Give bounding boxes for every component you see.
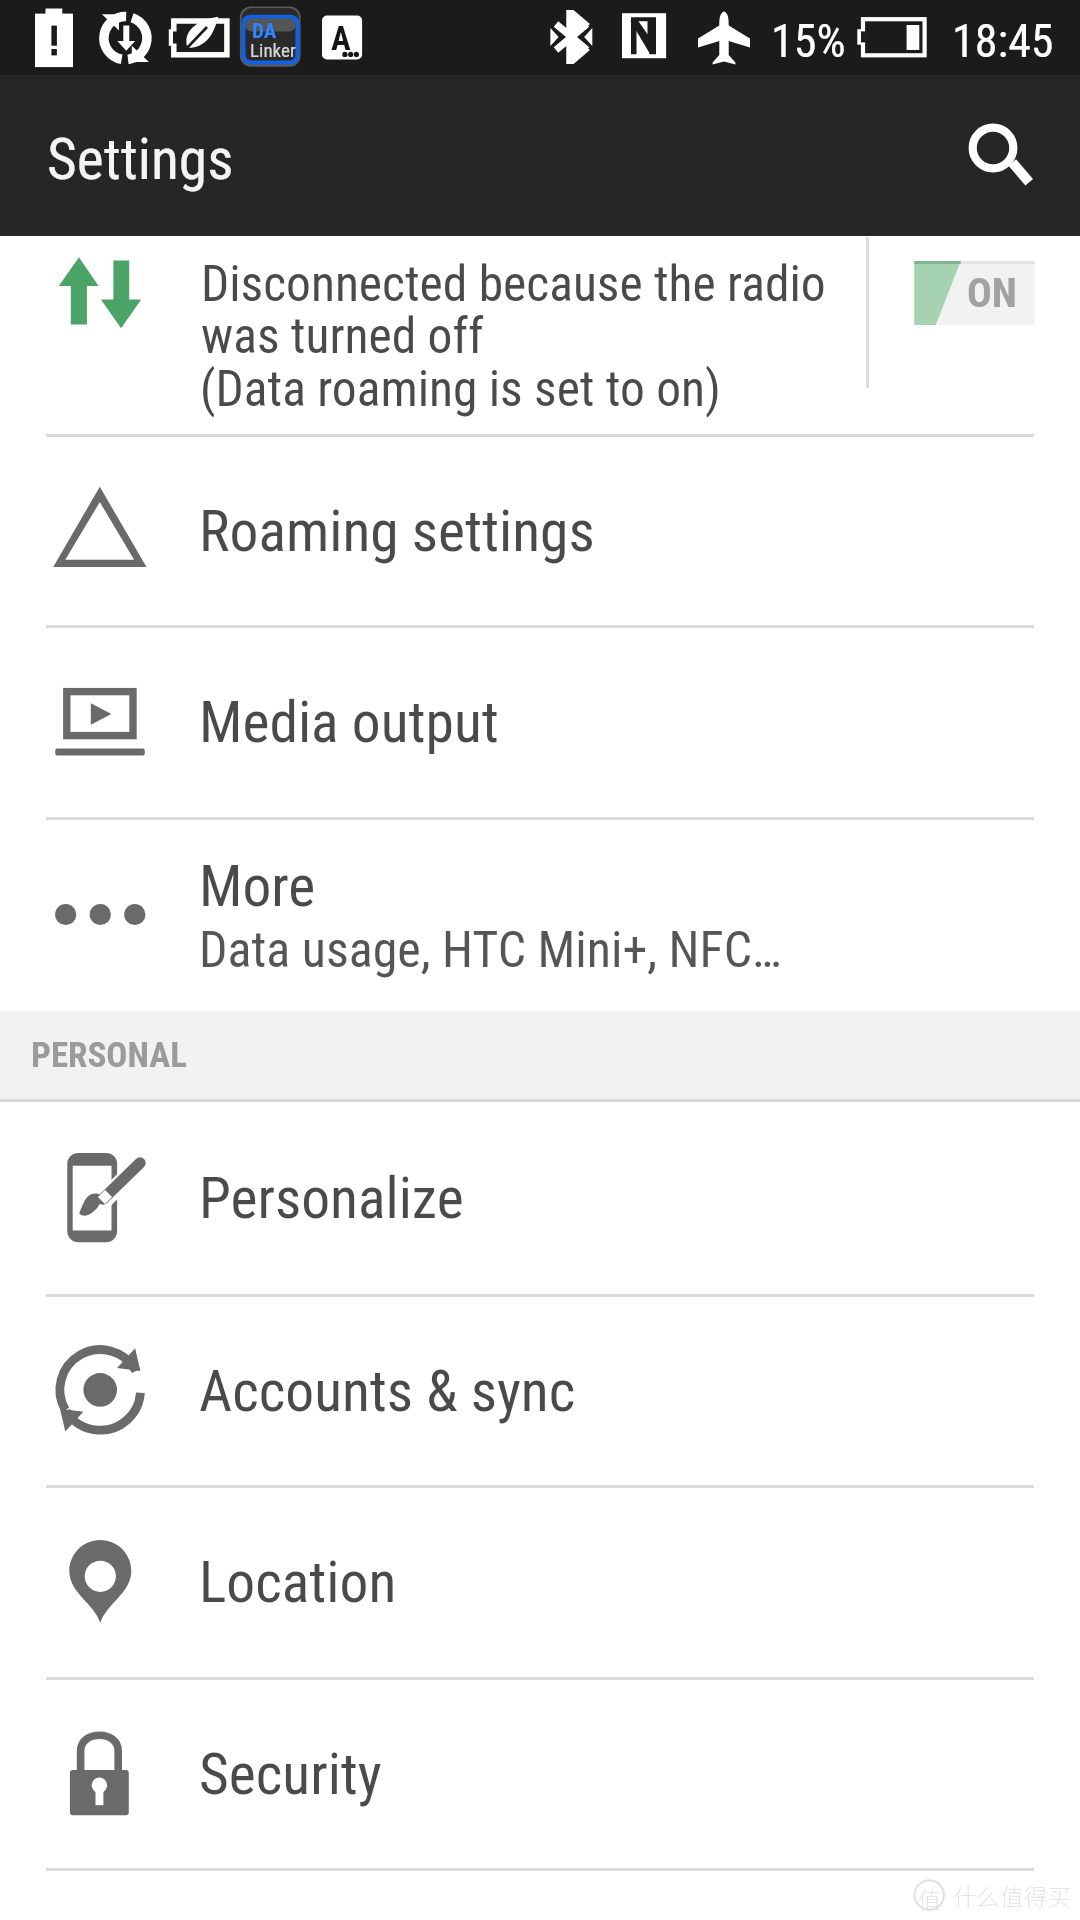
staticText: Linker [250, 39, 296, 61]
button[interactable]: Personalize [0, 1102, 1080, 1294]
staticText: A [331, 19, 351, 58]
staticText: Roaming settings [199, 498, 595, 565]
button[interactable]: More [0, 820, 1080, 1011]
button[interactable]: Roaming settings [0, 437, 1080, 625]
staticText: 什么值得买 [953, 1879, 1071, 1913]
button[interactable]: Search [942, 96, 1062, 216]
staticText: Personalize [199, 1165, 464, 1232]
button[interactable]: Media output [0, 628, 1080, 817]
staticText: More [199, 853, 316, 920]
staticText: Location [199, 1549, 397, 1616]
staticText: Data usage, HTC Mini+, NFC… [199, 921, 782, 980]
staticText: Disconnected because the radio [201, 255, 826, 313]
staticText: 值 [918, 1882, 941, 1915]
staticText: 15% [771, 14, 846, 68]
button[interactable]: Security [0, 1680, 1080, 1868]
staticText: Security [199, 1741, 382, 1808]
button[interactable]: Disconnected because the radio [0, 236, 1080, 434]
staticText: DA [252, 19, 277, 44]
staticText: Settings [47, 126, 234, 193]
staticText: ON [967, 269, 1017, 317]
staticText: PERSONAL [31, 1035, 187, 1076]
staticText: 18:45 [952, 14, 1054, 68]
button[interactable]: Accounts & sync [0, 1297, 1080, 1485]
staticText: (Data roaming is set to on) [200, 360, 721, 418]
staticText: Media output [199, 689, 499, 756]
staticText: was turned off [201, 307, 484, 365]
staticText: Accounts & sync [199, 1358, 576, 1425]
button[interactable]: Location [0, 1488, 1080, 1677]
